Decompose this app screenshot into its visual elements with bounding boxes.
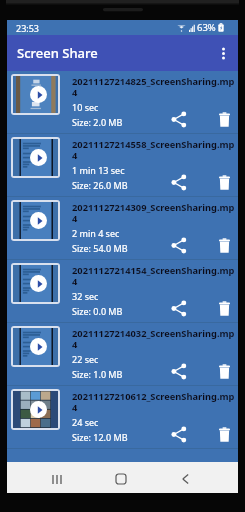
button[interactable]: Delete (215, 299, 233, 317)
staticText: 10 sec (72, 101, 99, 113)
button[interactable]: Delete (215, 425, 233, 443)
staticText: 20211127210612_ScreenSharing.mp4 (72, 390, 237, 413)
staticText: Size: 12.0 MB (72, 431, 128, 443)
button[interactable]: Recents (42, 464, 72, 494)
button[interactable]: 20211127214825_ScreenSharing.mp4 (7, 71, 238, 134)
staticText: Screen Share (17, 44, 98, 62)
staticText: 2 min 4 sec (72, 227, 120, 239)
staticText: Size: 26.0 MB (72, 179, 128, 191)
button[interactable]: 20211127214309_ScreenSharing.mp4 (7, 197, 238, 260)
staticText: 20211127214825_ScreenSharing.mp4 (72, 75, 237, 98)
button[interactable]: Share (168, 108, 190, 130)
button[interactable]: Share (168, 297, 190, 319)
button[interactable]: Back (170, 464, 200, 494)
staticText: Size: 1.0 MB (72, 368, 123, 380)
staticText: 20211127214032_ScreenSharing.mp4 (72, 327, 237, 350)
button[interactable]: 20211127210612_ScreenSharing.mp4 (7, 386, 238, 449)
button[interactable]: Delete (215, 173, 233, 191)
button[interactable]: More options (208, 38, 238, 68)
button[interactable]: Share (168, 423, 190, 445)
staticText: 20211127214309_ScreenSharing.mp4 (72, 201, 237, 224)
button[interactable]: 20211127214558_ScreenSharing.mp4 (7, 134, 238, 197)
staticText: 1 min 13 sec (72, 164, 125, 176)
button[interactable]: 20211127214032_ScreenSharing.mp4 (7, 323, 238, 386)
button[interactable]: Share (168, 171, 190, 193)
button[interactable]: Delete (215, 236, 233, 254)
staticText: 20211127214558_ScreenSharing.mp4 (72, 138, 237, 161)
staticText: Size: 0.0 MB (72, 305, 123, 317)
button[interactable]: Home (106, 464, 136, 494)
button[interactable]: Delete (215, 362, 233, 380)
staticText: 24 sec (72, 416, 99, 428)
button[interactable]: Delete (215, 110, 233, 128)
staticText: Size: 54.0 MB (72, 242, 128, 254)
button[interactable]: Share (168, 360, 190, 382)
button[interactable]: Share (168, 234, 190, 256)
staticText: 23:53 (16, 22, 40, 34)
staticText: Size: 2.0 MB (72, 116, 123, 128)
button[interactable]: 20211127214154_ScreenSharing.mp4 (7, 260, 238, 323)
staticText: 22 sec (72, 353, 99, 365)
staticText: 32 sec (72, 290, 99, 302)
staticText: 63% (197, 21, 216, 34)
staticText: 20211127214154_ScreenSharing.mp4 (72, 264, 237, 287)
